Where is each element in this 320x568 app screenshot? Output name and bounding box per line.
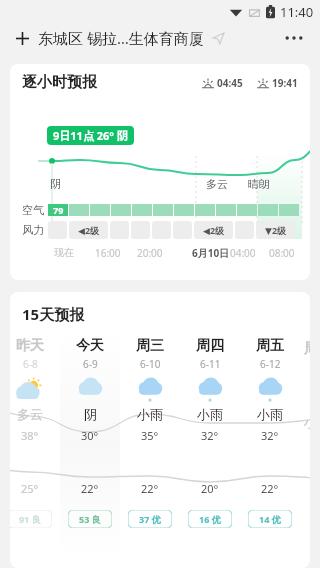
staticText: 6月10日 (192, 246, 230, 260)
button[interactable]: 周四 (180, 292, 240, 568)
staticText: 阴 (84, 406, 97, 422)
staticText: 逐小时预报 (22, 73, 97, 92)
staticText: 22° (81, 481, 99, 496)
staticText: 晴朗 (248, 177, 270, 191)
staticText: 91 良 (19, 513, 41, 525)
button[interactable]: 逐小时预报 (10, 64, 310, 280)
staticText: 今天 (76, 337, 104, 355)
staticText: 04:45 (217, 76, 243, 90)
staticText: 15天预报 (22, 304, 85, 324)
staticText: 04:00 (230, 246, 256, 260)
button[interactable]: More options (280, 24, 308, 52)
staticText: 小雨 (137, 406, 163, 422)
staticText: 多云 (17, 406, 43, 422)
button[interactable]: 今天 (60, 292, 120, 568)
staticText: 6-12 (260, 357, 281, 371)
staticText: 阴 (50, 177, 61, 191)
staticText: 19:41 (272, 76, 298, 90)
button[interactable]: 周三 (120, 292, 180, 568)
staticText: 35° (141, 428, 159, 443)
staticText: 32° (201, 428, 219, 443)
staticText: 6-11 (200, 357, 221, 371)
staticText: 30° (81, 428, 99, 443)
other: Location (210, 30, 226, 46)
staticText: 6-8 (23, 357, 38, 371)
staticText: 08:00 (269, 246, 295, 260)
staticText: 53 良 (79, 513, 101, 525)
staticText: 14 优 (259, 513, 281, 525)
staticText: 多云 (206, 177, 228, 191)
staticText: 37 优 (139, 513, 161, 525)
staticText: 22° (261, 481, 279, 496)
staticText: 周三 (136, 337, 164, 355)
staticText: 38° (21, 428, 39, 443)
staticText: 现在 (54, 246, 74, 259)
staticText: 6-10 (140, 357, 161, 371)
button[interactable]: 昨天 (10, 292, 60, 568)
staticText: 风力 (22, 223, 44, 237)
staticText: 16:00 (95, 246, 121, 260)
staticText: 20° (201, 481, 219, 496)
staticText: 小雨 (197, 406, 223, 422)
staticText: ◀2级 (78, 224, 100, 236)
staticText: 22° (141, 481, 159, 496)
staticText: 周五 (256, 337, 284, 355)
staticText: ◀2级 (203, 224, 225, 236)
staticText: 11:40 (280, 3, 314, 21)
staticText: 25° (21, 481, 39, 496)
button[interactable]: 东城区 锡拉…生体育商厦 (38, 28, 204, 48)
staticText: 空气 (22, 203, 44, 217)
staticText: 小雨 (257, 406, 283, 422)
button[interactable]: 15天预报 (10, 292, 310, 568)
staticText: ▼2级 (265, 224, 287, 236)
staticText: 32° (261, 428, 279, 443)
staticText: 16 优 (199, 513, 221, 525)
staticText: 9日11点 26° 阴 (53, 128, 128, 143)
staticText: 79 (53, 204, 64, 216)
staticText: 6-9 (83, 357, 98, 371)
button[interactable]: Add city (12, 28, 32, 48)
staticText: 20:00 (137, 246, 163, 260)
staticText: 昨天 (16, 337, 44, 355)
staticText: 周四 (196, 337, 224, 355)
button[interactable]: 周五 (240, 292, 300, 568)
